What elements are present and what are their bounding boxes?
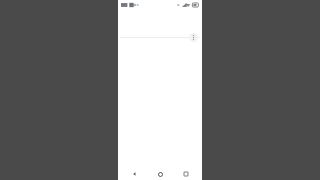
button[interactable]: Home [151, 168, 169, 180]
button[interactable]: Back [126, 168, 144, 180]
button[interactable]: Recent apps [177, 168, 195, 180]
button[interactable]: More options [188, 32, 199, 43]
